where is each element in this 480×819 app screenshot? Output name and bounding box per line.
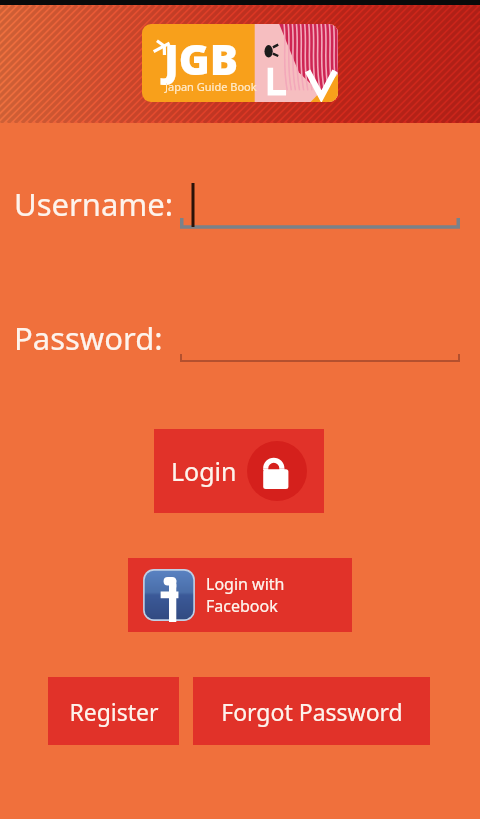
button[interactable]: Login (154, 429, 324, 513)
staticText: Forgot Password (221, 696, 403, 727)
staticText: Password: (14, 317, 163, 359)
other: Login (247, 441, 307, 501)
staticText: JGB (164, 30, 239, 87)
staticText: Login with Facebook (206, 573, 342, 617)
button[interactable]: Register (48, 677, 179, 745)
staticText: Username: (14, 183, 174, 225)
staticText: Japan Guide Book (165, 79, 257, 94)
other: Login with Facebook (142, 568, 196, 622)
staticText: Register (69, 696, 159, 727)
button[interactable]: Forgot Password (193, 677, 430, 745)
button[interactable]: Login with Facebook (128, 558, 352, 632)
staticText: Login (171, 454, 237, 488)
